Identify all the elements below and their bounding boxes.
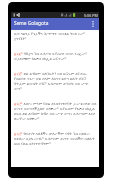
staticText: ፩፥፪። ቀይ ልብስም አለበሱት፤ ወደ እርሱም እየመጡ የአይሁድ ን… (14, 71, 97, 91)
staticText: ፩፥፬። የካህናት አለቆችና ሎሌዎችም ባዩት ጊዜ ስቀለው ስቀለው … (14, 131, 97, 146)
staticText: ፩፥፫። እነሆ፥ ምንም በደል እንዳላገኘሁበት ታውቁ ዘንድ ወደ እ… (14, 101, 97, 121)
button[interactable]: More options (87, 18, 99, 30)
staticText: ስመ ጎልጎታ የጌታችን ሕማማተ መስቀል ትረካ ነው። ያንብቡ። (14, 31, 97, 41)
staticText: 5:06 PM (84, 13, 98, 18)
staticText: ፩፥፩። በዚያን ጊዜ ጲላጦስ ኢየሱስን ወስዶ ገረፈው፤ ወታደሮቹም… (14, 51, 97, 61)
staticText: Seme Golagota (14, 20, 49, 27)
